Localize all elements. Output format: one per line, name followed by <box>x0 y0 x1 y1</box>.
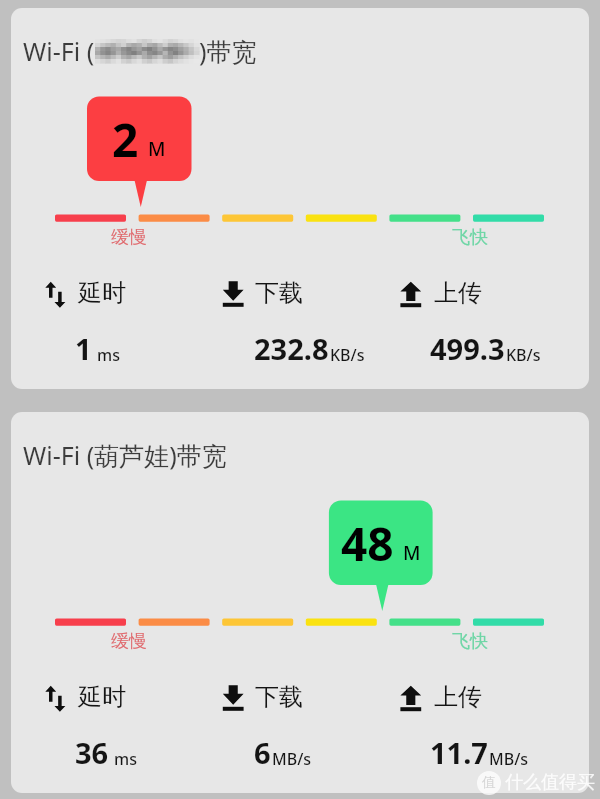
staticText: 延时 <box>78 682 126 712</box>
button[interactable]: 下载 <box>255 682 303 712</box>
button[interactable]: Wi-Fi ( <box>11 8 589 389</box>
button[interactable]: 延时 <box>78 278 126 308</box>
staticText: 2 <box>112 108 139 171</box>
staticText: 延时 <box>78 278 126 308</box>
staticText: 下载 <box>255 682 303 712</box>
staticText: 飞快 <box>452 630 488 653</box>
staticText: 48 <box>341 512 394 575</box>
staticText: 499.3 <box>430 329 505 368</box>
staticText: 值 <box>482 774 496 792</box>
staticText: Wi-Fi (葫芦娃)带宽 <box>23 438 227 472</box>
staticText: 上传 <box>434 278 482 308</box>
staticText: MB/s <box>272 748 312 770</box>
button[interactable]: 上传 <box>434 682 482 712</box>
staticText: KB/s <box>506 344 541 366</box>
staticText: 1 <box>75 329 92 368</box>
button[interactable]: 上传 <box>434 278 482 308</box>
button[interactable]: Wi-Fi (葫芦娃)带宽 <box>11 412 589 793</box>
staticText: M <box>148 136 166 162</box>
staticText: KB/s <box>330 344 365 366</box>
staticText: MB/s <box>489 748 529 770</box>
button[interactable]: 下载 <box>255 278 303 308</box>
staticText: ms <box>114 748 137 770</box>
staticText: 缓慢 <box>111 226 147 249</box>
staticText: ms <box>97 344 120 366</box>
staticText: 什么值得买 <box>505 771 595 794</box>
staticText: )带宽 <box>199 34 257 68</box>
staticText: 11.7 <box>430 733 488 772</box>
staticText: 下载 <box>255 278 303 308</box>
staticText: 36 <box>75 733 109 772</box>
staticText: 6 <box>254 733 271 772</box>
button[interactable]: 延时 <box>78 682 126 712</box>
staticText: 缓慢 <box>111 630 147 653</box>
staticText: 上传 <box>434 682 482 712</box>
staticText: M <box>403 540 421 566</box>
staticText: 飞快 <box>452 226 488 249</box>
staticText: 232.8 <box>254 329 329 368</box>
staticText: Wi-Fi ( <box>23 34 95 68</box>
